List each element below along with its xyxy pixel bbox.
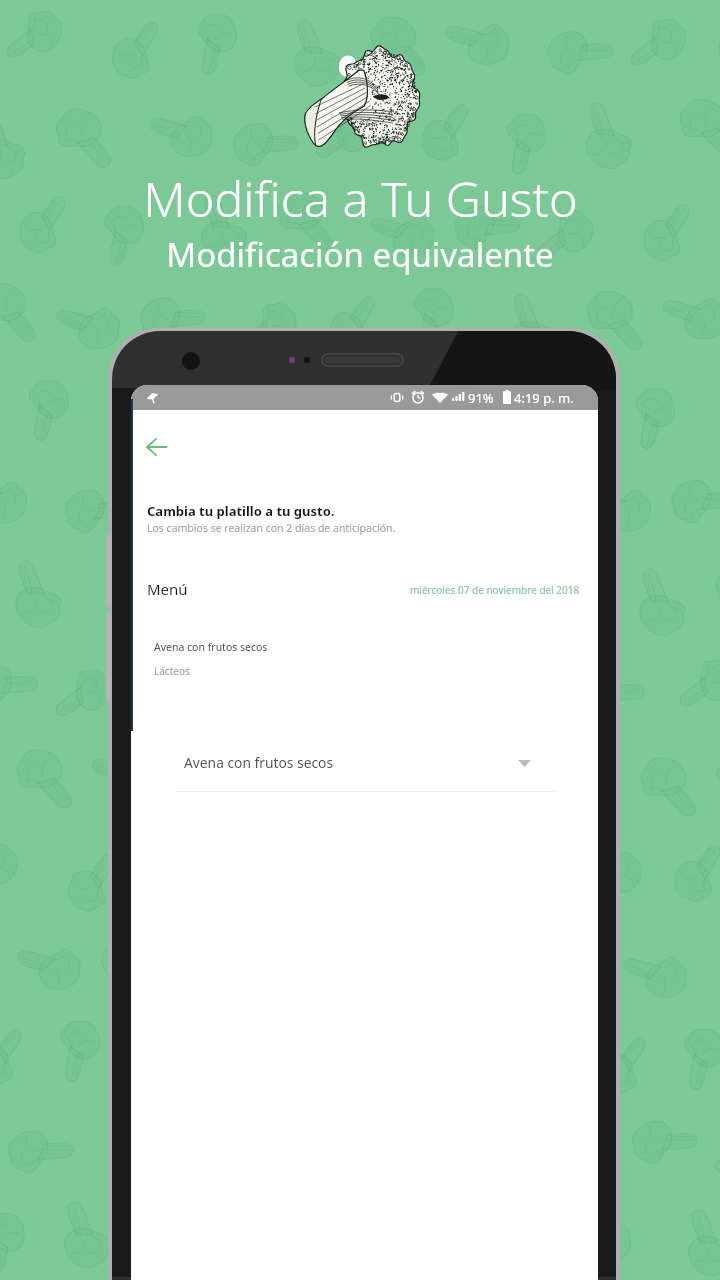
staticText: miércoles 07 de noviembre del 2018 (410, 583, 580, 597)
staticText: Avena con frutos secos (184, 753, 334, 772)
staticText: 4:19 p. m. (514, 389, 574, 407)
staticText: Menú (147, 579, 188, 599)
button[interactable]: Avena con frutos secos (131, 633, 598, 681)
staticText: Modificación equivalente (166, 232, 554, 277)
staticText: Cambia tu platillo a tu gusto. (147, 502, 335, 520)
staticText: Los cambios se realizan con 2 días de an… (147, 521, 396, 535)
staticText: Lácteos (154, 664, 190, 678)
button[interactable]: Avena con frutos secos (175, 743, 555, 791)
button[interactable]: Back (134, 425, 178, 469)
staticText: Avena con frutos secos (154, 640, 268, 654)
staticText: Modifica a Tu Gusto (143, 165, 578, 231)
staticText: 91% (468, 389, 494, 407)
